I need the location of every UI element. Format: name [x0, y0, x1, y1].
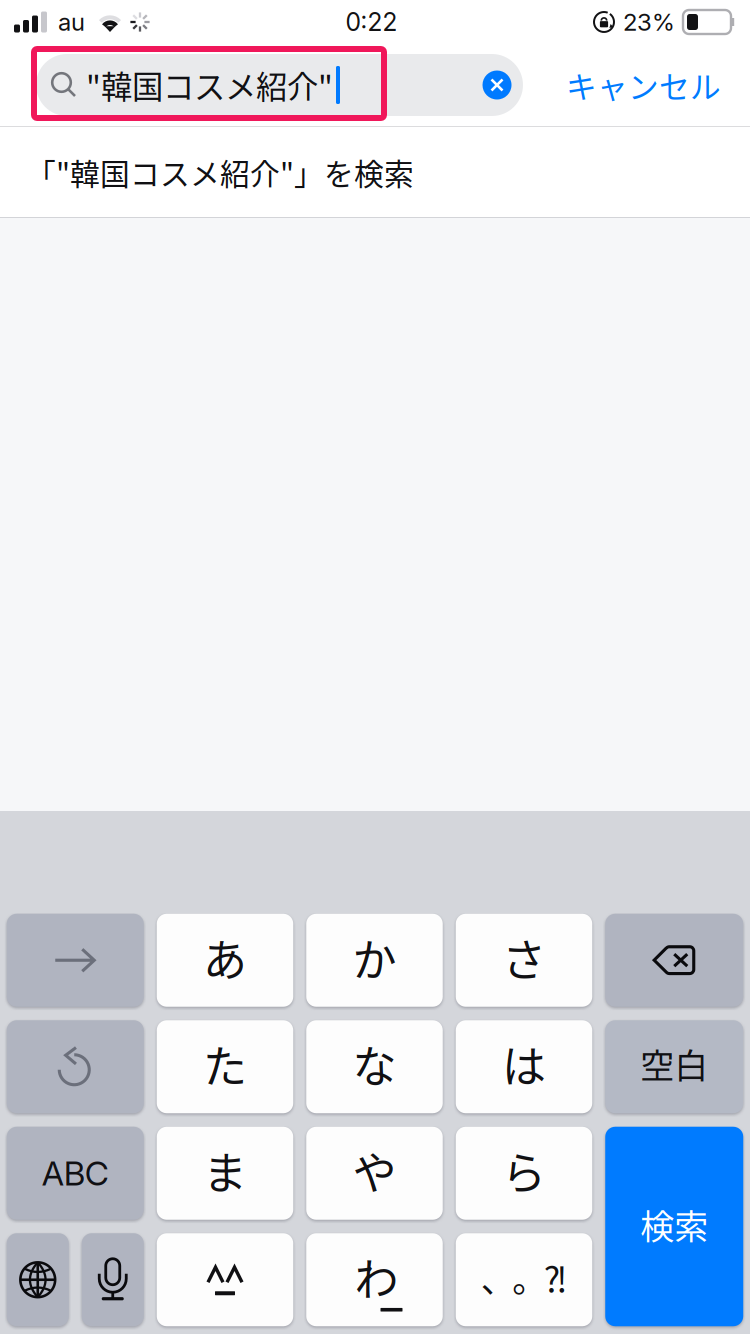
button[interactable]	[7, 914, 144, 1007]
staticText: か	[352, 925, 396, 989]
button[interactable]: 検索	[605, 1127, 743, 1326]
button[interactable]: な	[306, 1020, 443, 1113]
button[interactable]: は	[456, 1020, 592, 1113]
staticText: ABC	[42, 1153, 109, 1193]
staticText: ら	[502, 1138, 546, 1202]
staticText: 空白	[640, 1039, 708, 1088]
button[interactable]: わ	[306, 1233, 443, 1326]
button[interactable]	[605, 914, 743, 1007]
staticText: あ	[203, 925, 247, 989]
button[interactable]	[157, 1233, 293, 1326]
button[interactable]: Clear text	[471, 54, 523, 116]
staticText: 「"韓国コスメ紹介"」を検索	[26, 150, 414, 194]
staticText: た	[203, 1032, 247, 1096]
staticText: は	[502, 1032, 546, 1096]
button[interactable]: キャンセル	[566, 54, 721, 116]
button[interactable]	[82, 1233, 144, 1326]
button[interactable]	[7, 1233, 69, 1326]
staticText: au	[58, 7, 85, 36]
staticText: ま	[203, 1138, 247, 1202]
button[interactable]: か	[306, 914, 443, 1007]
staticText: わ	[354, 1245, 398, 1309]
button[interactable]: や	[306, 1127, 443, 1220]
button[interactable]: ま	[157, 1127, 293, 1220]
staticText: な	[352, 1032, 396, 1096]
button[interactable]: た	[157, 1020, 293, 1113]
button[interactable]	[7, 1020, 144, 1113]
button[interactable]: ABC	[7, 1127, 144, 1220]
button[interactable]: 空白	[605, 1020, 743, 1113]
staticText: "韓国コスメ紹介"	[86, 62, 333, 108]
button[interactable]: 、。?!	[456, 1233, 592, 1326]
button[interactable]: さ	[456, 914, 592, 1007]
button[interactable]: "韓国コスメ紹介"	[36, 54, 523, 116]
staticText: さ	[502, 925, 546, 989]
staticText: や	[352, 1138, 396, 1202]
staticText: 検索	[640, 1200, 708, 1249]
staticText: キャンセル	[566, 63, 721, 107]
staticText: 、。?!	[481, 1253, 567, 1303]
staticText: 23%	[623, 7, 675, 36]
button[interactable]: ら	[456, 1127, 592, 1220]
button[interactable]: あ	[157, 914, 293, 1007]
button[interactable]: 「"韓国コスメ紹介"」を検索	[0, 127, 750, 217]
staticText: 0:22	[345, 7, 397, 37]
